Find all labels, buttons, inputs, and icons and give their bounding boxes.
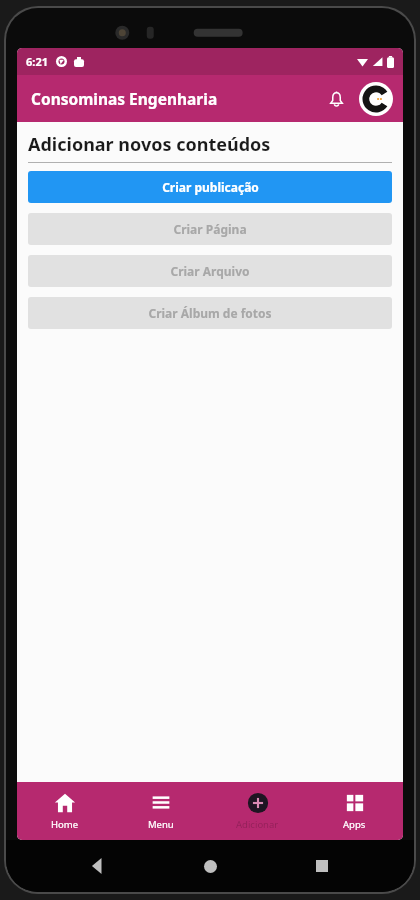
- staticText: Apps: [343, 818, 366, 831]
- button[interactable]: Profile: [359, 82, 393, 116]
- staticText: 6:21: [26, 54, 48, 69]
- button[interactable]: Criar Álbum de fotos: [28, 297, 392, 329]
- staticText: Menu: [148, 818, 174, 831]
- button[interactable]: Recent apps: [302, 846, 342, 886]
- staticText: Consominas Engenharia: [31, 88, 218, 109]
- button[interactable]: Adicionar: [209, 782, 306, 840]
- button[interactable]: Apps: [306, 782, 403, 840]
- staticText: Home: [51, 818, 79, 831]
- button[interactable]: Home: [17, 782, 113, 840]
- button[interactable]: Home: [190, 846, 230, 886]
- staticText: Adicionar novos conteúdos: [28, 132, 271, 157]
- button[interactable]: Criar publicação: [28, 171, 392, 203]
- button[interactable]: Notifications: [319, 82, 353, 116]
- staticText: Adicionar: [236, 818, 279, 831]
- button[interactable]: Menu: [113, 782, 209, 840]
- button[interactable]: Criar Arquivo: [28, 255, 392, 287]
- staticText: Criar publicação: [162, 179, 259, 195]
- staticText: Criar Álbum de fotos: [148, 305, 272, 321]
- staticText: Criar Arquivo: [170, 263, 250, 279]
- button[interactable]: Criar Página: [28, 213, 392, 245]
- button[interactable]: Back: [78, 846, 118, 886]
- staticText: Criar Página: [173, 221, 247, 237]
